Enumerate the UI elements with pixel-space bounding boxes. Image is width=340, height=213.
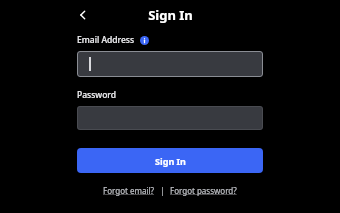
button[interactable]: Forgot password? xyxy=(169,184,238,197)
staticText: Sign In xyxy=(155,155,186,167)
button[interactable]: Back xyxy=(72,4,94,26)
staticText: Forgot email? xyxy=(103,185,155,196)
button[interactable]: Password input field xyxy=(77,106,263,130)
button[interactable]: Email address information xyxy=(139,35,149,45)
staticText: Sign In xyxy=(148,6,193,24)
staticText: Password xyxy=(77,89,117,101)
button[interactable]: Email address input field xyxy=(77,51,263,77)
button[interactable]: Sign In xyxy=(77,148,263,173)
staticText: Email Address xyxy=(77,34,135,46)
staticText: Forgot password? xyxy=(170,185,237,196)
button[interactable]: Forgot email? xyxy=(102,184,156,197)
staticText: | xyxy=(156,185,169,196)
